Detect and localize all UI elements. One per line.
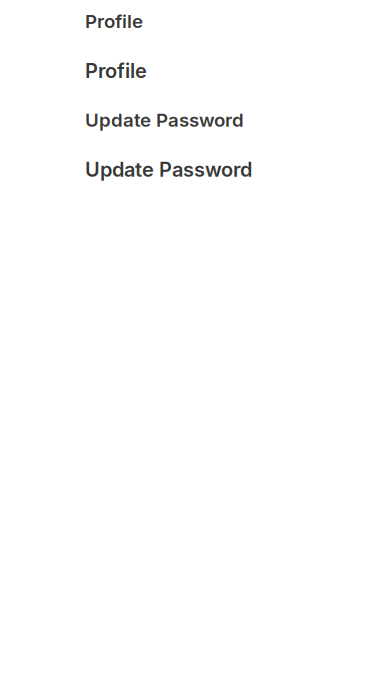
staticText: Profile [85, 59, 147, 83]
staticText: Update Password [85, 109, 244, 131]
staticText: Profile [85, 10, 143, 33]
staticText: Update Password [85, 157, 252, 182]
